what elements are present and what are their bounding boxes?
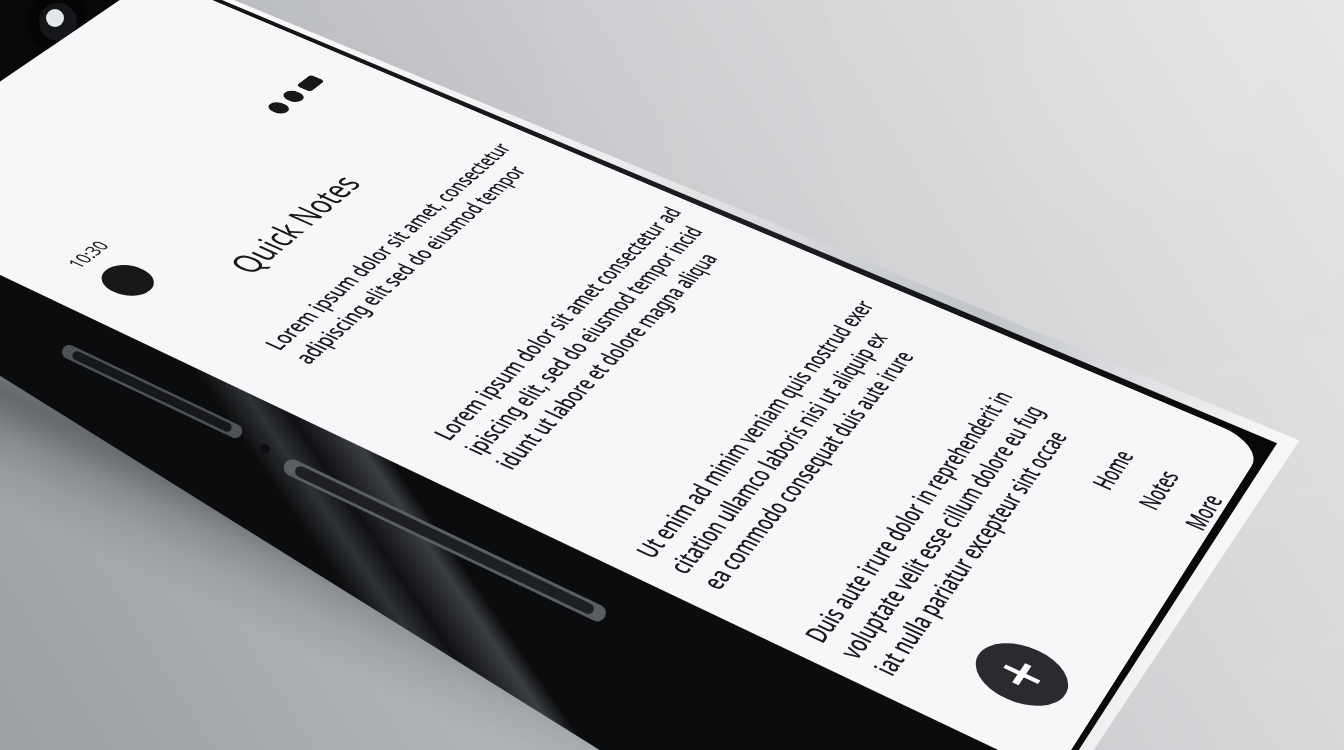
button[interactable]: Lorem ipsum dolor sit amet consectetur a… bbox=[34, 352, 312, 406]
button[interactable]: Duis aute irure dolor in reprehenderit i… bbox=[15, 567, 274, 621]
staticText: Duis aute irure dolor in reprehenderit i… bbox=[15, 567, 274, 585]
staticText: Lorem ipsum dolor sit amet, consectetur bbox=[42, 246, 305, 264]
staticText: citation ullamco laboris nisi ut aliquip… bbox=[18, 493, 278, 511]
staticText: Ut enim ad minim veniam quis nostrud exe… bbox=[18, 475, 302, 493]
staticText: ea commodo consequat duis aute irure bbox=[18, 511, 271, 529]
staticText: adipiscing elit sed do eiusmod tempor bbox=[42, 264, 289, 282]
staticText: ipiscing elit, sed do eiusmod tempor inc… bbox=[34, 370, 303, 388]
staticText: Lorem ipsum dolor sit amet consectetur a… bbox=[34, 352, 312, 370]
button[interactable]: Ut enim ad minim veniam quis nostrud exe… bbox=[18, 475, 302, 529]
staticText: idunt ut labore et dolore magna aliqua bbox=[34, 388, 284, 406]
